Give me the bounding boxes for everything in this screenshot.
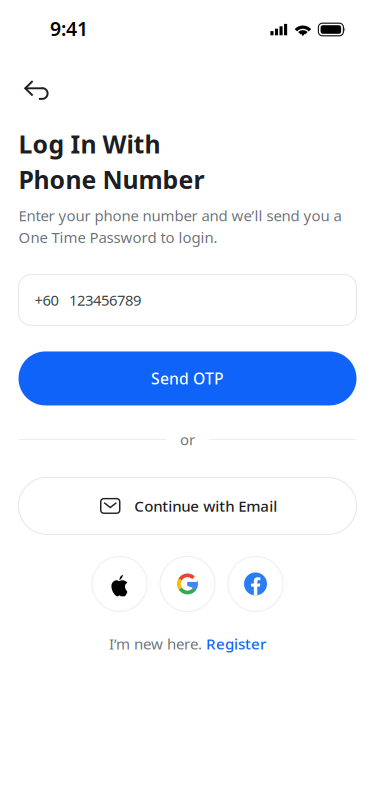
staticText: 123456789	[69, 290, 141, 310]
button[interactable]: Continue with Email	[18, 477, 356, 534]
button[interactable]: Continue with Facebook	[228, 556, 283, 611]
staticText: Register	[206, 633, 266, 654]
button[interactable]: Register	[206, 633, 266, 654]
button[interactable]: Send OTP	[18, 351, 356, 405]
button[interactable]: Back	[0, 54, 63, 109]
staticText: 9:41	[50, 15, 88, 42]
button[interactable]: Continue with Apple	[92, 556, 147, 611]
staticText: Phone Number	[18, 162, 204, 196]
button[interactable]: Continue with Google	[160, 556, 215, 611]
staticText: Continue with Email	[134, 496, 277, 516]
staticText: or	[180, 429, 195, 450]
staticText: +60	[34, 290, 58, 310]
staticText: Log In With	[18, 127, 160, 161]
staticText: I’m new here.	[109, 633, 206, 654]
staticText: Send OTP	[151, 368, 224, 389]
staticText: One Time Password to login.	[18, 227, 217, 247]
staticText: Enter your phone number and we’ll send y…	[18, 205, 341, 226]
